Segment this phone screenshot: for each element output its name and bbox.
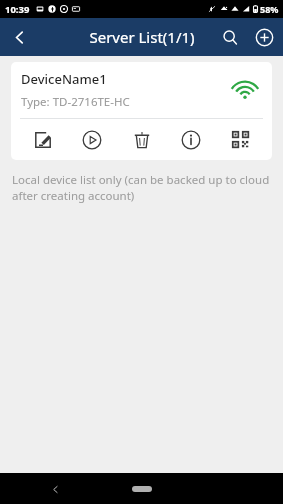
button[interactable]: DeviceName1 <box>11 62 272 160</box>
button[interactable]: Delete <box>124 122 160 158</box>
staticText: Local device list only (can be backed up… <box>12 172 270 203</box>
staticText: 58% <box>260 3 279 15</box>
button[interactable]: Home <box>122 478 162 500</box>
button[interactable]: Info <box>173 122 209 158</box>
staticText: Server List(1/1) <box>89 27 195 47</box>
button[interactable]: Play <box>74 122 110 158</box>
staticText: 10:39 <box>5 3 30 16</box>
button[interactable]: QR code <box>223 122 259 158</box>
staticText: Type: TD-2716TE-HC <box>21 94 130 110</box>
button[interactable]: Back <box>0 18 38 56</box>
button[interactable]: Search <box>213 20 247 54</box>
button[interactable]: Add device <box>247 20 281 54</box>
button[interactable]: Edit <box>25 122 61 158</box>
button[interactable]: Back <box>40 474 70 504</box>
staticText: DeviceName1 <box>21 70 107 88</box>
